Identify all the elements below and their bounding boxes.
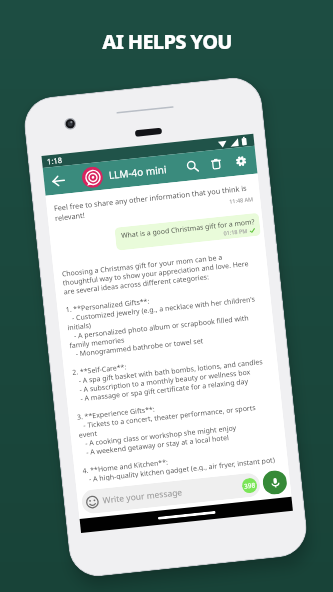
button[interactable]: Settings [229,149,253,173]
button[interactable]: Voice message [262,469,288,496]
staticText: Feel free to share any other information… [53,183,248,223]
staticText: 11:48 AM [229,195,253,205]
staticText: Write your message [102,486,183,506]
staticText: What is a good Christmas gift for a mom? [121,217,255,240]
staticText: 01:18 PM [223,227,248,236]
staticText: AI HELPS YOU [102,28,232,55]
staticText: LLM-4o mini [108,162,167,182]
button[interactable]: Write your message [81,472,261,515]
staticText: Choosing a Christmas gift for your mom c… [61,249,281,483]
button[interactable]: Back [46,168,71,193]
staticText: 1:18 [46,155,62,166]
staticText: 398 [244,480,256,491]
button[interactable]: Delete [204,152,228,176]
button[interactable]: Search [180,154,204,178]
